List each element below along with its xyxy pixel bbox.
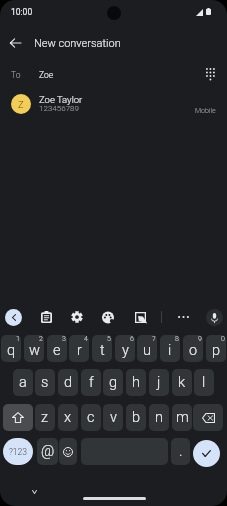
button[interactable]: j [149,369,169,396]
button[interactable]: . [171,438,190,465]
staticText: 5 [107,335,111,343]
staticText: To [11,70,21,80]
button[interactable]: c [81,404,101,431]
button[interactable]: Resize keyboard [130,307,150,327]
button[interactable]: ?123 [3,438,33,465]
button[interactable]: Shift [3,404,33,431]
staticText: Z [18,99,24,110]
staticText: . [179,443,183,460]
staticText: New conversation [34,37,121,50]
staticText: ?123 [9,447,28,457]
staticText: i [168,342,172,359]
button[interactable]: d [58,369,78,396]
staticText: 8 [175,335,179,343]
staticText: r [77,342,82,359]
staticText: 9 [198,335,202,343]
staticText: h [132,374,140,391]
button[interactable]: z [35,404,55,431]
button[interactable]: f [81,369,101,396]
button[interactable]: More options [173,307,193,327]
staticText: z [41,409,49,426]
staticText: k [178,374,186,391]
button[interactable]: q [1,335,21,362]
button[interactable]: @ [37,438,58,465]
staticText: 1 [16,335,20,343]
staticText: g [109,374,118,391]
staticText: 2 [39,335,43,343]
staticText: Zoe Taylor [39,94,83,105]
staticText: 4 [84,335,88,343]
staticText: @ [41,443,55,460]
staticText: o [189,342,198,359]
button[interactable]: Dialpad [199,63,221,85]
button[interactable]: m [172,404,192,431]
button[interactable]: t [92,335,112,362]
button[interactable]: Voice input [206,309,223,326]
button[interactable]: Hide keyboard [26,484,42,500]
staticText: Zoe [39,70,54,80]
staticText: l [202,374,206,391]
button[interactable]: Clipboard [36,307,56,327]
staticText: t [100,342,105,359]
staticText: m [176,409,189,426]
button[interactable]: s [35,369,55,396]
button[interactable]: r [69,335,89,362]
staticText: j [157,374,161,391]
button[interactable]: y [115,335,135,362]
button[interactable]: w [24,335,44,362]
button[interactable]: v [103,404,123,431]
button[interactable]: n [149,404,169,431]
staticText: s [41,374,49,391]
staticText: b [132,409,141,426]
button[interactable]: k [172,369,192,396]
staticText: e [53,342,61,359]
staticText: f [89,374,94,391]
button[interactable]: p [206,335,226,362]
staticText: a [19,374,27,391]
button[interactable]: e [47,335,67,362]
staticText: y [122,342,129,359]
staticText: x [64,409,72,426]
staticText: 7 [152,335,156,343]
button[interactable]: Back [5,309,22,326]
staticText: u [143,342,151,359]
button[interactable]: a [13,369,33,396]
button[interactable]: Send [193,440,220,467]
staticText: w [29,342,40,359]
button[interactable]: o [183,335,203,362]
button[interactable]: Back [2,30,28,56]
staticText: 3 [62,335,66,343]
button[interactable]: b [126,404,146,431]
button[interactable]: Theme [98,307,118,327]
staticText: Mobile [195,107,216,115]
button[interactable]: Settings [67,307,87,327]
button[interactable]: i [160,335,180,362]
staticText: 6 [130,335,134,343]
staticText: 0 [221,335,225,343]
button[interactable]: x [58,404,78,431]
staticText: v [110,409,117,426]
button[interactable]: h [126,369,146,396]
button[interactable]: g [103,369,123,396]
button[interactable]: Emoji [59,438,77,465]
button[interactable] [0,88,227,119]
staticText: 10:00 [11,7,33,17]
staticText: 123456789 [39,104,79,113]
staticText: c [87,409,95,426]
button[interactable]: Backspace [193,404,223,431]
staticText: p [212,342,221,359]
button[interactable]: l [194,369,214,396]
staticText: n [155,409,163,426]
button[interactable]: u [137,335,157,362]
staticText: d [64,374,73,391]
staticText: q [7,342,16,359]
